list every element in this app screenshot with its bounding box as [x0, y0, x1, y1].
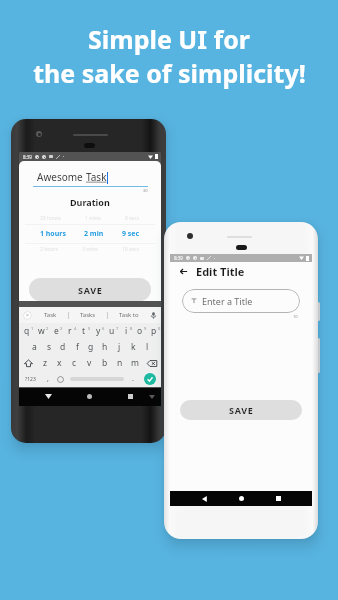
other: Hide keyboard — [45, 394, 52, 399]
staticText: 8:39 — [23, 154, 32, 160]
staticText: SAVE — [229, 404, 254, 416]
staticText: . — [132, 374, 134, 384]
staticText: u — [109, 325, 115, 337]
staticText: 8 secs — [125, 215, 140, 222]
button[interactable]: Back — [178, 266, 189, 277]
staticText: h — [102, 341, 108, 353]
staticText: Enter a Title — [202, 295, 253, 307]
staticText: Task — [44, 311, 57, 319]
staticText: n — [117, 357, 123, 369]
staticText: x — [57, 357, 62, 369]
staticText: q — [24, 325, 30, 337]
staticText: b — [102, 357, 108, 369]
staticText: d — [60, 341, 66, 353]
staticText: f — [76, 341, 79, 353]
staticText: a — [32, 341, 37, 353]
staticText: ?123 — [25, 376, 36, 383]
staticText: 1 — [31, 326, 34, 331]
staticText: y — [96, 325, 101, 337]
staticText: g — [88, 341, 94, 353]
staticText: p — [151, 325, 157, 337]
staticText: Duration — [70, 196, 110, 208]
staticText: j — [118, 341, 121, 353]
staticText: 10 — [293, 314, 298, 319]
staticText: 0 — [158, 326, 161, 331]
staticText: 10 secs — [122, 246, 140, 253]
staticText: w — [38, 325, 45, 337]
staticText: the sake of simplicity! — [33, 56, 306, 90]
staticText: o — [137, 325, 143, 337]
staticText: s — [47, 341, 52, 353]
staticText: 1 mins — [85, 215, 101, 222]
staticText: 1 hours — [40, 229, 66, 239]
button[interactable]: Enter a Title — [182, 289, 300, 313]
staticText: , — [47, 374, 49, 384]
staticText: Simple UI for — [88, 22, 250, 56]
staticText: 9 sec — [122, 229, 140, 239]
staticText: 8:39 — [174, 255, 183, 261]
staticText: 2 min — [84, 229, 104, 239]
staticText: z — [43, 357, 47, 369]
staticText: m — [131, 357, 139, 369]
other: Back — [202, 496, 208, 502]
staticText: 6 — [102, 326, 105, 331]
other: Home — [87, 394, 92, 399]
staticText: 3 mins — [82, 246, 98, 253]
staticText: 2 hours — [40, 246, 58, 253]
staticText: 7 — [116, 326, 119, 331]
other: Switch keyboard — [149, 395, 155, 399]
button[interactable]: SAVE — [29, 278, 151, 301]
staticText: 30 — [143, 188, 148, 193]
staticText: 9 — [144, 326, 147, 331]
staticText: t — [82, 325, 86, 337]
staticText: 4 — [74, 326, 77, 331]
staticText: Edit Title — [196, 264, 245, 279]
staticText: 23 hours — [40, 215, 61, 222]
staticText: v — [87, 357, 92, 369]
staticText: 8 — [130, 326, 133, 331]
staticText: c — [72, 357, 77, 369]
staticText: e — [54, 325, 59, 337]
staticText: Task — [86, 170, 107, 184]
staticText: r — [68, 325, 72, 337]
staticText: Tasks — [80, 311, 96, 319]
staticText: i — [125, 325, 128, 337]
staticText: 5 — [88, 326, 91, 331]
staticText: SAVE — [78, 284, 103, 296]
staticText: 2 — [46, 326, 49, 331]
staticText: 3 — [60, 326, 63, 331]
staticText: Awesome — [37, 170, 86, 184]
staticText: k — [131, 341, 136, 353]
staticText: Task to — [119, 311, 139, 319]
staticText: l — [146, 341, 149, 353]
button[interactable]: SAVE — [180, 400, 302, 420]
other: Home — [239, 496, 244, 501]
staticText: > — [26, 312, 29, 319]
